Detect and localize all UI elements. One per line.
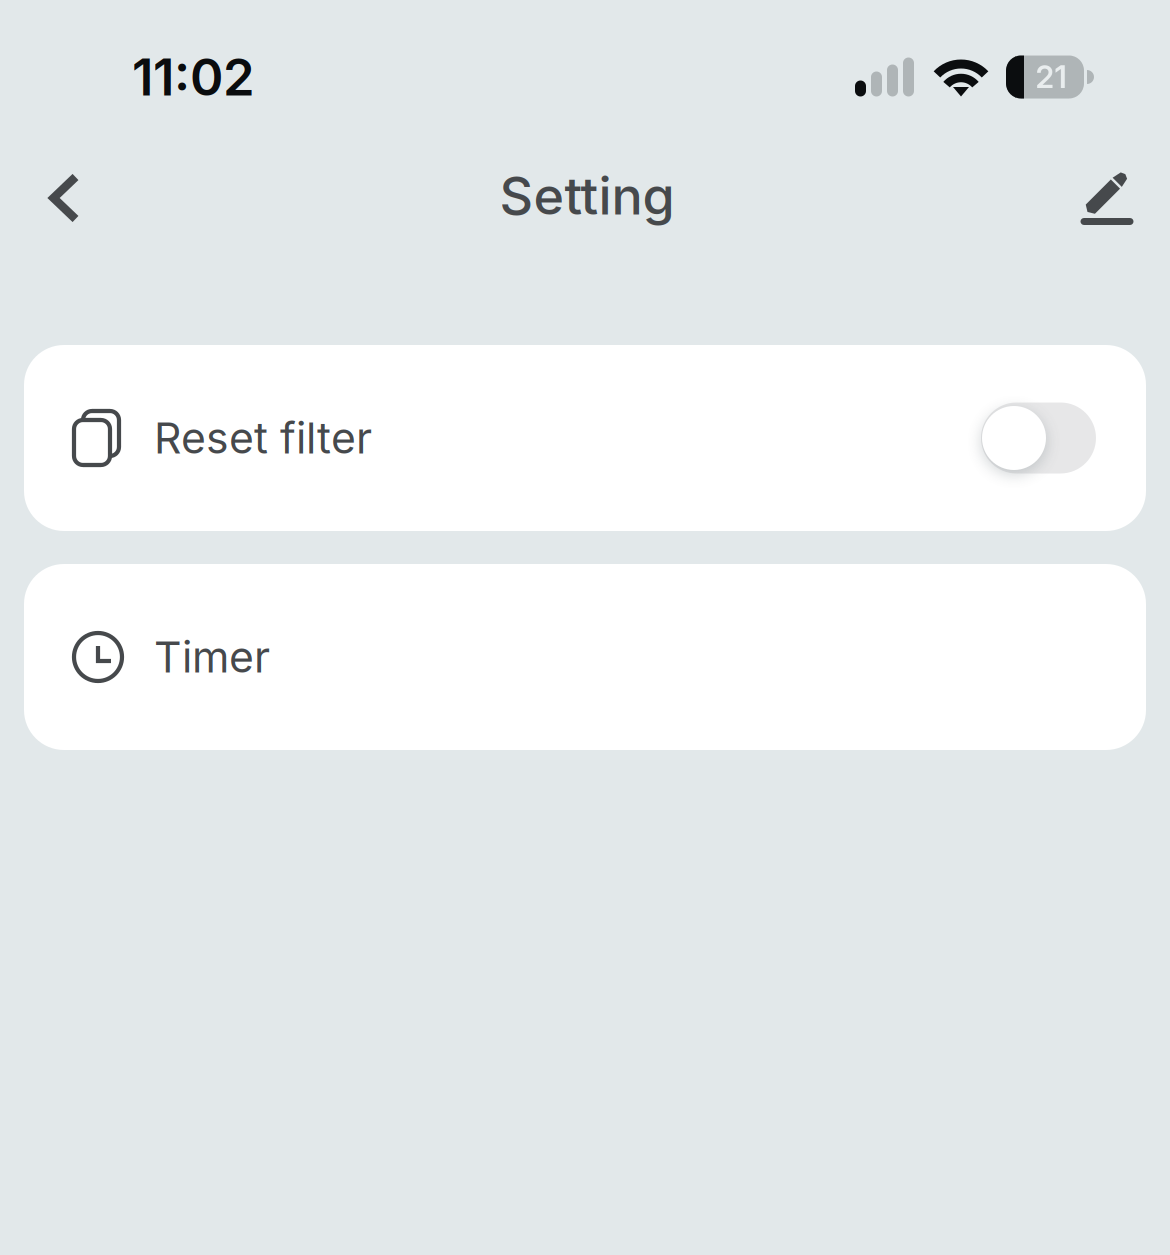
staticText: Reset filter xyxy=(154,412,372,464)
staticText: Setting xyxy=(499,164,674,227)
button[interactable]: Back xyxy=(23,157,107,241)
button[interactable]: Reset filter xyxy=(24,345,1146,531)
button[interactable]: Edit xyxy=(1065,157,1149,241)
staticText: 11:02 xyxy=(132,46,255,108)
staticText: Timer xyxy=(154,631,270,683)
button[interactable]: Timer xyxy=(24,564,1146,750)
staticText: 21 xyxy=(1035,58,1066,95)
